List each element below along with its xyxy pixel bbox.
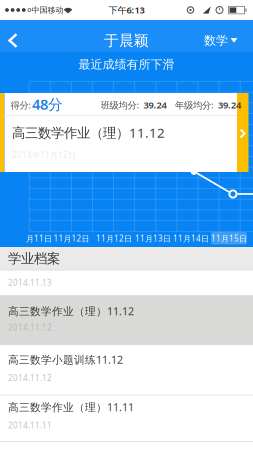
- staticText: 数学: [204, 33, 228, 48]
- staticText: 高三数学作业（理）11.11: [8, 400, 134, 414]
- staticText: 高三数学小题训练11.12: [8, 352, 123, 367]
- staticText: 11月12日: [96, 233, 132, 244]
- staticText: 11月13日: [135, 233, 171, 244]
- button[interactable]: 2014.11.13: [0, 270, 253, 295]
- staticText: 2014.11.13: [8, 277, 52, 288]
- staticText: 于晨颖: [104, 31, 149, 49]
- staticText: 2014.11.12: [8, 322, 52, 333]
- button[interactable]: 高三数学小题训练11.12: [0, 345, 253, 395]
- staticText: 11月12日: [53, 233, 89, 244]
- staticText: 2014.11.11: [8, 420, 52, 431]
- staticText: 2014年11月12日: [12, 150, 76, 160]
- staticText: 最近成绩有所下滑: [78, 57, 174, 72]
- staticText: 班级均分:: [100, 99, 139, 111]
- button[interactable]: 选择科目: [199, 25, 245, 55]
- staticText: 48分: [32, 94, 63, 114]
- staticText: 下午6:13: [108, 4, 144, 16]
- staticText: 中国移动: [31, 5, 63, 15]
- button[interactable]: 得分:: [4, 93, 248, 172]
- staticText: 2014.11.12: [8, 373, 52, 383]
- staticText: 学业档案: [8, 250, 60, 267]
- staticText: 11月15日: [211, 233, 247, 244]
- staticText: 39.24: [218, 99, 241, 111]
- staticText: 11月14日: [173, 233, 209, 244]
- staticText: 年级均分:: [175, 99, 214, 111]
- button[interactable]: 高三数学作业（理）11.12: [0, 295, 253, 345]
- staticText: 39.24: [143, 99, 166, 111]
- staticText: 得分:: [10, 99, 31, 111]
- button[interactable]: 高三数学作业（理）11.11: [0, 395, 253, 441]
- staticText: 高三数学作业（理）11.12: [12, 124, 165, 141]
- button[interactable]: 返回: [0, 26, 26, 54]
- staticText: 高三数学作业（理）11.12: [8, 304, 134, 318]
- staticText: 月11日: [26, 233, 52, 244]
